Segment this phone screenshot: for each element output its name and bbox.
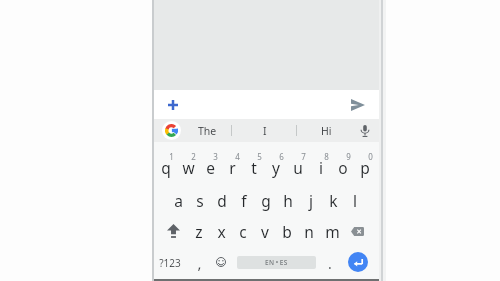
- button[interactable]: k: [322, 185, 344, 215]
- button[interactable]: q: [155, 152, 177, 182]
- staticText: 3: [213, 151, 218, 162]
- staticText: 8: [324, 151, 329, 162]
- staticText: a: [174, 190, 183, 211]
- button[interactable]: b: [276, 216, 298, 246]
- staticText: p: [360, 157, 370, 178]
- staticText: The: [198, 124, 217, 138]
- button[interactable]: ,: [191, 250, 207, 276]
- staticText: 9: [346, 151, 351, 162]
- button[interactable]: e: [199, 152, 221, 182]
- staticText: x: [217, 221, 226, 242]
- staticText: n: [304, 221, 314, 242]
- staticText: 4: [235, 151, 240, 162]
- staticText: EN • ES: [265, 258, 288, 267]
- staticText: 6: [279, 151, 284, 162]
- button[interactable]: s: [189, 185, 211, 215]
- button[interactable]: [348, 252, 368, 272]
- button[interactable]: .: [323, 250, 337, 276]
- staticText: .: [328, 254, 332, 273]
- staticText: t: [251, 157, 257, 178]
- staticText: ,: [197, 253, 202, 273]
- button[interactable]: d: [211, 185, 233, 215]
- staticText: d: [217, 190, 227, 211]
- staticText: ?123: [159, 256, 181, 270]
- button[interactable]: i: [310, 152, 332, 182]
- staticText: s: [196, 190, 204, 211]
- button[interactable]: z: [188, 216, 210, 246]
- button[interactable]: I: [251, 119, 279, 142]
- staticText: 0: [368, 151, 373, 162]
- button[interactable]: ?123: [155, 248, 185, 278]
- button[interactable]: h: [277, 185, 299, 215]
- staticText: I: [263, 124, 267, 138]
- button[interactable]: x: [210, 216, 232, 246]
- button[interactable]: [354, 120, 376, 142]
- button[interactable]: [162, 121, 181, 140]
- button[interactable]: Hi: [312, 119, 340, 142]
- staticText: g: [261, 190, 271, 211]
- button[interactable]: c: [232, 216, 254, 246]
- button[interactable]: w: [177, 152, 199, 182]
- staticText: c: [239, 221, 247, 242]
- staticText: k: [329, 190, 338, 211]
- staticText: b: [282, 221, 292, 242]
- staticText: w: [182, 157, 195, 178]
- staticText: z: [195, 221, 203, 242]
- button[interactable]: n: [298, 216, 320, 246]
- staticText: 2: [191, 151, 196, 162]
- button[interactable]: v: [254, 216, 276, 246]
- button[interactable]: [154, 90, 192, 119]
- staticText: 5: [257, 151, 262, 162]
- button[interactable]: [158, 216, 188, 246]
- button[interactable]: t: [243, 152, 265, 182]
- staticText: h: [283, 190, 293, 211]
- staticText: j: [309, 190, 313, 211]
- staticText: i: [319, 157, 323, 178]
- button[interactable]: f: [233, 185, 255, 215]
- button[interactable]: The: [193, 119, 221, 142]
- button[interactable]: [154, 90, 379, 119]
- staticText: 7: [301, 151, 306, 162]
- button[interactable]: u: [287, 152, 309, 182]
- button[interactable]: y: [265, 152, 287, 182]
- staticText: f: [241, 190, 247, 211]
- button[interactable]: a: [167, 185, 189, 215]
- button[interactable]: EN • ES: [237, 256, 316, 269]
- button[interactable]: [337, 90, 379, 119]
- button[interactable]: g: [255, 185, 277, 215]
- staticText: e: [206, 157, 215, 178]
- button[interactable]: o: [332, 152, 354, 182]
- button[interactable]: r: [221, 152, 243, 182]
- button[interactable]: [211, 249, 231, 275]
- button[interactable]: m: [321, 216, 343, 246]
- staticText: l: [353, 190, 357, 211]
- staticText: u: [293, 157, 303, 178]
- staticText: 1: [169, 151, 174, 162]
- staticText: m: [325, 221, 340, 242]
- staticText: r: [229, 157, 236, 178]
- staticText: q: [161, 157, 171, 178]
- staticText: o: [338, 157, 348, 178]
- button[interactable]: j: [300, 185, 322, 215]
- button[interactable]: l: [344, 185, 366, 215]
- staticText: Hi: [321, 124, 332, 138]
- staticText: v: [261, 221, 269, 242]
- button[interactable]: p: [354, 152, 376, 182]
- staticText: y: [272, 157, 280, 178]
- button[interactable]: [342, 216, 372, 246]
